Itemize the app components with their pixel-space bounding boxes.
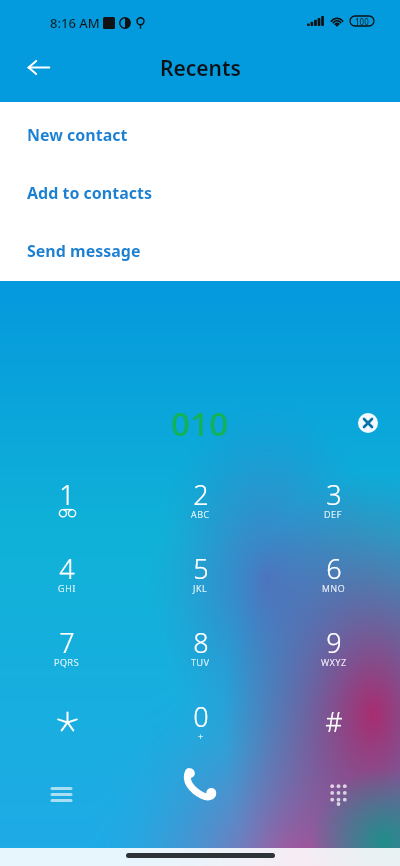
button[interactable]: Call bbox=[172, 755, 228, 811]
button[interactable]: 5 bbox=[134, 537, 267, 611]
staticText: 8:16 AM bbox=[50, 14, 100, 32]
staticText: JKL bbox=[193, 582, 208, 594]
button[interactable]: 9 bbox=[267, 611, 400, 685]
staticText: 8 bbox=[193, 624, 209, 661]
staticText: GHI bbox=[58, 582, 76, 594]
button[interactable]: Add to contacts bbox=[0, 164, 400, 222]
staticText: 0 bbox=[193, 698, 209, 735]
staticText: 6 bbox=[326, 550, 342, 587]
staticText: MNO bbox=[322, 582, 346, 594]
button[interactable]: New contact bbox=[0, 106, 400, 164]
button[interactable]: Delete bbox=[350, 405, 386, 441]
staticText: 5 bbox=[193, 550, 209, 587]
button[interactable]: Send message bbox=[0, 222, 400, 280]
staticText: PQRS bbox=[54, 656, 80, 668]
staticText: 7 bbox=[59, 624, 75, 661]
staticText: ABC bbox=[191, 508, 210, 520]
staticText: # bbox=[325, 703, 343, 734]
staticText: WXYZ bbox=[321, 656, 347, 668]
button[interactable] bbox=[0, 685, 134, 759]
staticText: 3 bbox=[326, 476, 342, 513]
button[interactable]: # bbox=[267, 685, 400, 759]
staticText: Recents bbox=[160, 54, 241, 83]
button[interactable]: 0 bbox=[134, 685, 267, 759]
staticText: + bbox=[198, 730, 204, 742]
button[interactable]: 3 bbox=[267, 463, 400, 537]
staticText: 1 bbox=[59, 476, 75, 513]
button[interactable]: 4 bbox=[0, 537, 134, 611]
button[interactable]: Back bbox=[15, 44, 61, 90]
staticText: 9 bbox=[326, 624, 342, 661]
staticText: 100 bbox=[355, 16, 369, 26]
button[interactable]: Dialpad bbox=[313, 769, 363, 819]
button[interactable]: 7 bbox=[0, 611, 134, 685]
button[interactable]: Call log bbox=[36, 769, 86, 819]
staticText: 2 bbox=[193, 476, 209, 513]
staticText: Add to contacts bbox=[27, 182, 152, 204]
staticText: DEF bbox=[324, 508, 343, 520]
button[interactable]: 6 bbox=[267, 537, 400, 611]
staticText: 010 bbox=[171, 401, 229, 446]
button[interactable]: 1 bbox=[0, 463, 134, 537]
button[interactable]: 2 bbox=[134, 463, 267, 537]
staticText: 4 bbox=[59, 550, 75, 587]
button[interactable]: 8 bbox=[134, 611, 267, 685]
staticText: TUV bbox=[191, 656, 210, 668]
staticText: New contact bbox=[27, 124, 128, 146]
staticText: Send message bbox=[27, 240, 141, 262]
